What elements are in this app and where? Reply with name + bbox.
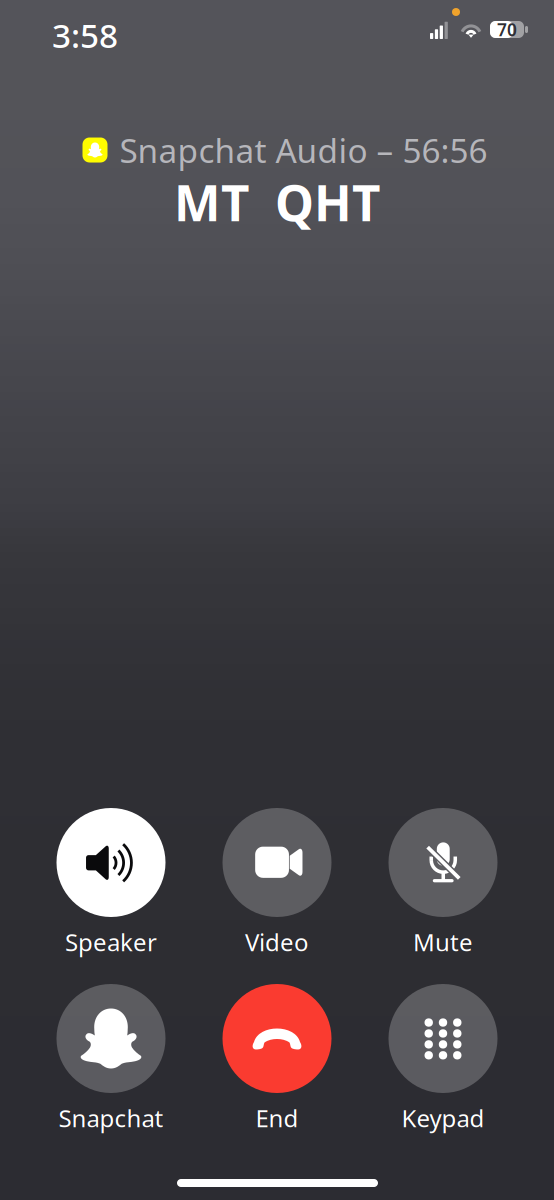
button[interactable]: Mute <box>360 808 526 955</box>
button[interactable]: Snapchat <box>28 984 194 1131</box>
staticText: 3:58 <box>52 13 118 57</box>
staticText: Mute <box>413 926 473 958</box>
staticText: Snapchat Audio – 56:56 <box>119 128 487 172</box>
staticText: End <box>255 1102 298 1134</box>
button[interactable]: Keypad <box>360 984 526 1131</box>
staticText: MT QHT <box>174 169 380 235</box>
button[interactable]: Video <box>194 808 360 955</box>
button[interactable]: Speaker <box>28 808 194 955</box>
button[interactable]: End <box>194 984 360 1131</box>
staticText: Video <box>245 926 309 958</box>
staticText: Speaker <box>65 926 157 958</box>
staticText: Snapchat <box>58 1102 163 1134</box>
staticText: Keypad <box>401 1102 484 1134</box>
staticText: 70 <box>497 18 517 41</box>
